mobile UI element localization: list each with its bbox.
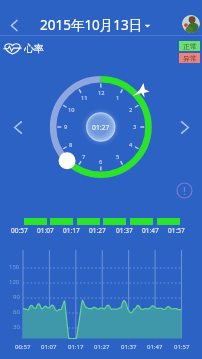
button[interactable]: 正常 (179, 41, 200, 51)
button[interactable]: 2015年10月13日 (40, 16, 151, 34)
button[interactable]: Profile (182, 15, 200, 33)
staticText: 6 (99, 158, 103, 166)
staticText: 2 (129, 106, 133, 114)
staticText: 01:37 (121, 343, 137, 351)
staticText: 150 (9, 263, 20, 271)
staticText: 01:27 (89, 226, 106, 235)
staticText: 10 (68, 106, 75, 114)
staticText: 01:47 (142, 226, 159, 235)
staticText: 90 (13, 293, 20, 301)
staticText: 01:17 (68, 343, 84, 351)
button[interactable]: 心率 (3, 42, 44, 55)
staticText: 异常 (183, 54, 197, 63)
staticText: 心率 (24, 42, 44, 55)
staticText: 01:57 (168, 226, 185, 235)
staticText: 12 (98, 89, 105, 97)
staticText: 01:57 (174, 343, 190, 351)
staticText: 01:07 (41, 343, 57, 351)
staticText: 60 (13, 308, 20, 316)
staticText: 8 (69, 141, 73, 149)
staticText: 7 (82, 153, 86, 161)
staticText: 00:57 (15, 343, 31, 351)
button[interactable]: Info (176, 182, 193, 199)
staticText: 30 (13, 323, 20, 331)
staticText: 00:57 (11, 226, 28, 235)
staticText: 01:07 (37, 226, 54, 235)
staticText: 2015年10月13日 (40, 16, 143, 34)
staticText: 5 (116, 153, 120, 161)
staticText: 4 (129, 141, 133, 149)
staticText: 1 (116, 94, 120, 102)
button[interactable]: Previous day (4, 113, 32, 141)
staticText: 01:27 (94, 343, 110, 351)
staticText: 9 (64, 123, 68, 131)
staticText: 11 (81, 94, 88, 102)
staticText: 正常 (183, 42, 197, 51)
button[interactable]: Back (1, 12, 27, 38)
staticText: 3 (133, 123, 137, 131)
staticText: 120 (9, 278, 20, 286)
button[interactable]: Next day (170, 113, 198, 141)
button[interactable]: 异常 (179, 53, 200, 63)
staticText: 01:17 (63, 226, 80, 235)
staticText: 01:37 (116, 226, 133, 235)
staticText: 01:47 (147, 343, 163, 351)
staticText: 01:27 (92, 123, 110, 132)
